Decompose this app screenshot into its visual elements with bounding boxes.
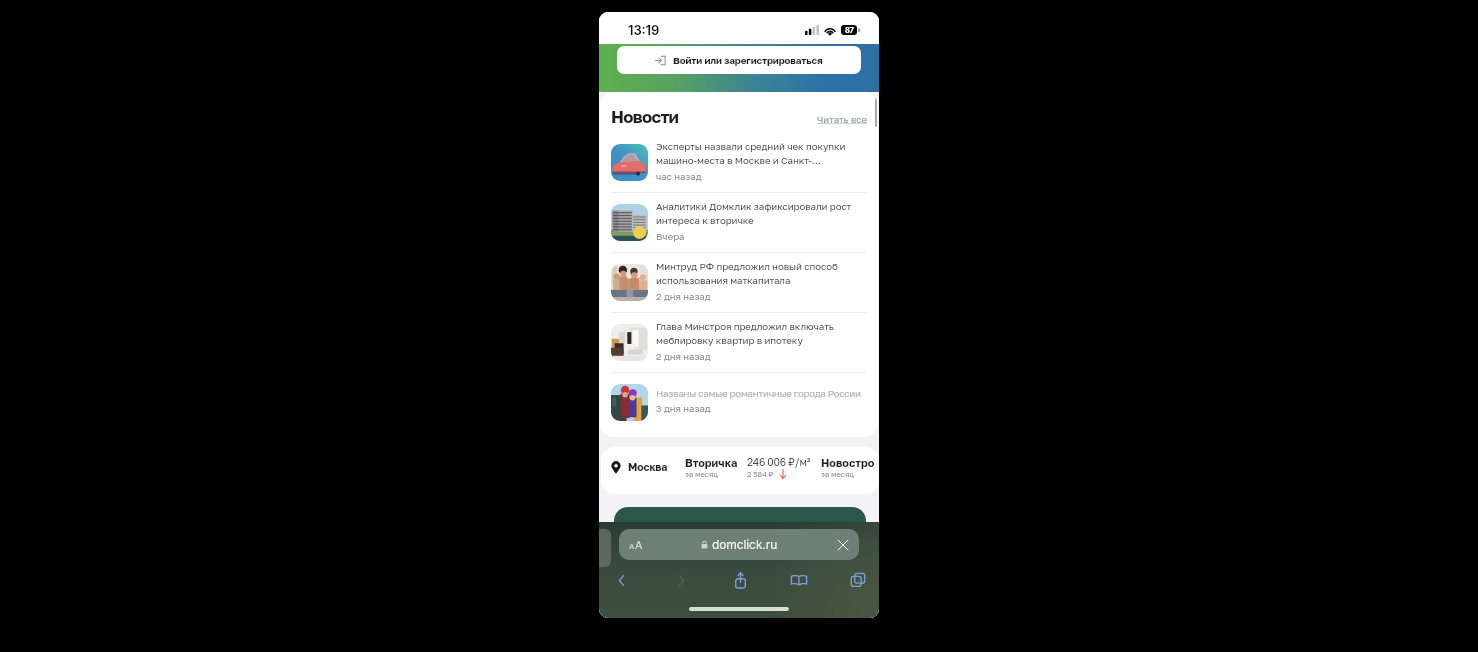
button[interactable] <box>614 507 866 607</box>
staticText: domclick.ru <box>712 537 778 552</box>
staticText: 2 584 ₽ <box>747 470 774 479</box>
staticText: Минтруд РФ предложил новый способ исполь… <box>656 260 838 287</box>
staticText: A <box>629 541 635 551</box>
staticText: за месяц <box>685 470 718 479</box>
button[interactable]: Tabs <box>844 566 872 594</box>
staticText: Новости <box>611 106 679 126</box>
staticText: Вторичка <box>685 456 738 469</box>
staticText: Читать все <box>817 114 867 125</box>
button[interactable]: Названы самые романтичные города России <box>600 373 878 432</box>
staticText: час назад <box>656 171 702 182</box>
staticText: A <box>635 538 643 551</box>
staticText: Москва <box>628 461 668 474</box>
staticText: 246 006 ₽/м² <box>747 456 811 468</box>
button[interactable]: Stop loading <box>835 537 851 553</box>
button[interactable]: A <box>619 529 859 560</box>
staticText: Глава Минстроя предложил включать меблир… <box>656 320 834 347</box>
staticText: 87 <box>845 26 854 35</box>
button[interactable]: Эксперты назвали средний чек покупки маш… <box>600 133 878 192</box>
button[interactable]: Читать все <box>817 114 867 126</box>
staticText: за месяц <box>821 470 854 479</box>
button[interactable]: Forward <box>667 566 695 594</box>
button[interactable]: Глава Минстроя предложил включать меблир… <box>600 313 878 372</box>
staticText: 2 дня назад <box>656 351 711 362</box>
button[interactable]: Bookmarks <box>785 566 813 594</box>
staticText: Эксперты назвали средний чек покупки маш… <box>656 140 846 167</box>
staticText: Войти или зарегистрироваться <box>673 54 823 66</box>
staticText: 2 дня назад <box>656 291 711 302</box>
button[interactable]: Войти или зарегистрироваться <box>617 46 861 74</box>
staticText: Аналитики Домклик зафиксировали рост инт… <box>656 200 852 227</box>
staticText: 13:19 <box>628 22 660 38</box>
staticText: Новострой <box>821 456 879 469</box>
button[interactable]: Аналитики Домклик зафиксировали рост инт… <box>600 193 878 252</box>
staticText: Вчера <box>656 231 685 242</box>
staticText: 3 дня назад <box>656 403 711 414</box>
button[interactable]: Москва <box>601 447 879 494</box>
button[interactable]: Share <box>726 566 754 594</box>
button[interactable]: Back <box>607 566 635 594</box>
button[interactable]: Минтруд РФ предложил новый способ исполь… <box>600 253 878 312</box>
staticText: Названы самые романтичные города России <box>656 387 861 399</box>
